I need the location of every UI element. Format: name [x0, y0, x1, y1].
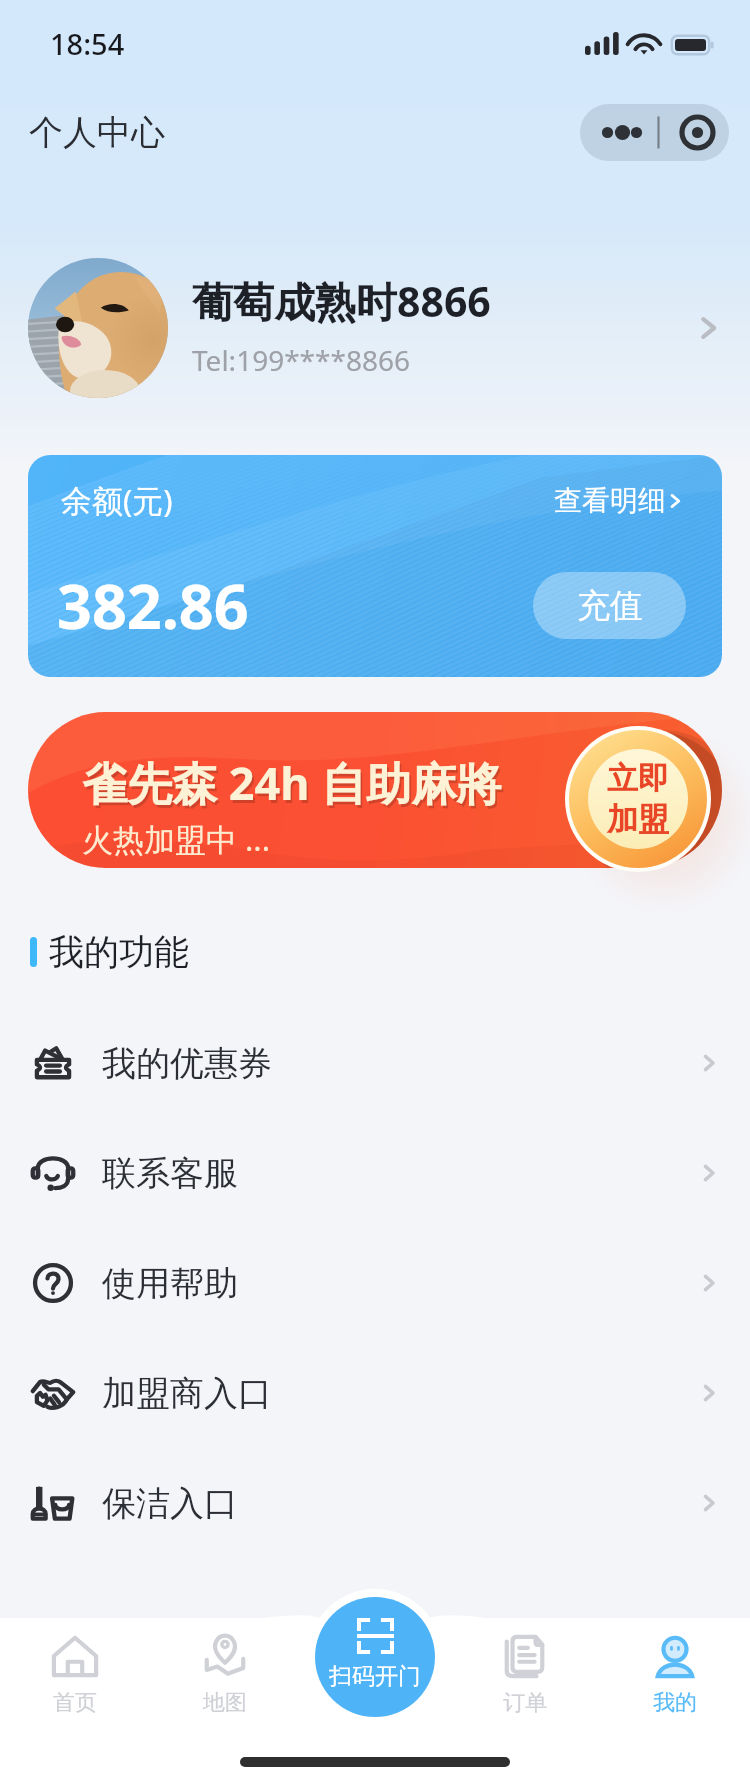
staticText: 加盟商入口: [102, 1372, 272, 1415]
staticText: 加盟: [607, 800, 669, 839]
staticText: 葡萄成熟时8866: [192, 273, 491, 329]
staticText: 首页: [53, 1689, 97, 1717]
button[interactable]: 保洁入口: [0, 1448, 750, 1558]
button[interactable]: 我的优惠券: [0, 1008, 750, 1118]
button[interactable]: 查看明细: [554, 483, 686, 518]
staticText: 382.86: [57, 564, 249, 647]
staticText: 订单: [503, 1689, 547, 1717]
button[interactable]: 立即: [569, 730, 707, 868]
staticText: 我的: [653, 1689, 697, 1717]
staticText: 余额(元): [61, 479, 173, 521]
button[interactable]: 我的: [600, 1618, 750, 1730]
button[interactable]: 加盟商入口: [0, 1338, 750, 1448]
button[interactable]: 地图: [150, 1618, 300, 1730]
staticText: 立即: [607, 759, 669, 798]
button[interactable]: 余额(元): [28, 455, 722, 677]
button[interactable]: 订单: [450, 1618, 600, 1730]
button[interactable]: 雀先森 24h 自助麻將: [28, 712, 722, 868]
staticText: 火热加盟中 ...: [82, 818, 270, 860]
staticText: 18:54: [50, 24, 125, 63]
staticText: 我的功能: [49, 930, 189, 974]
button[interactable]: 联系客服: [0, 1118, 750, 1228]
button[interactable]: Menu: [580, 104, 729, 161]
staticText: 雀先森 24h 自助麻將: [84, 755, 504, 816]
staticText: 扫码开门: [329, 1662, 421, 1691]
staticText: 个人中心: [29, 111, 165, 154]
staticText: Tel:199****8866: [192, 341, 410, 379]
button[interactable]: 扫码开门: [315, 1597, 435, 1717]
staticText: 充值: [577, 585, 643, 627]
staticText: 我的优惠券: [102, 1042, 272, 1085]
button[interactable]: 使用帮助: [0, 1228, 750, 1338]
staticText: 联系客服: [102, 1152, 238, 1195]
button[interactable]: 首页: [0, 1618, 150, 1730]
staticText: 雀先森 24h 自助麻將: [82, 752, 502, 813]
button[interactable]: 葡萄成熟时8866: [0, 258, 750, 398]
button[interactable]: 充值: [533, 572, 686, 639]
staticText: 使用帮助: [102, 1262, 238, 1305]
staticText: 地图: [203, 1689, 247, 1717]
staticText: 查看明细: [554, 483, 666, 518]
staticText: 保洁入口: [102, 1482, 238, 1525]
